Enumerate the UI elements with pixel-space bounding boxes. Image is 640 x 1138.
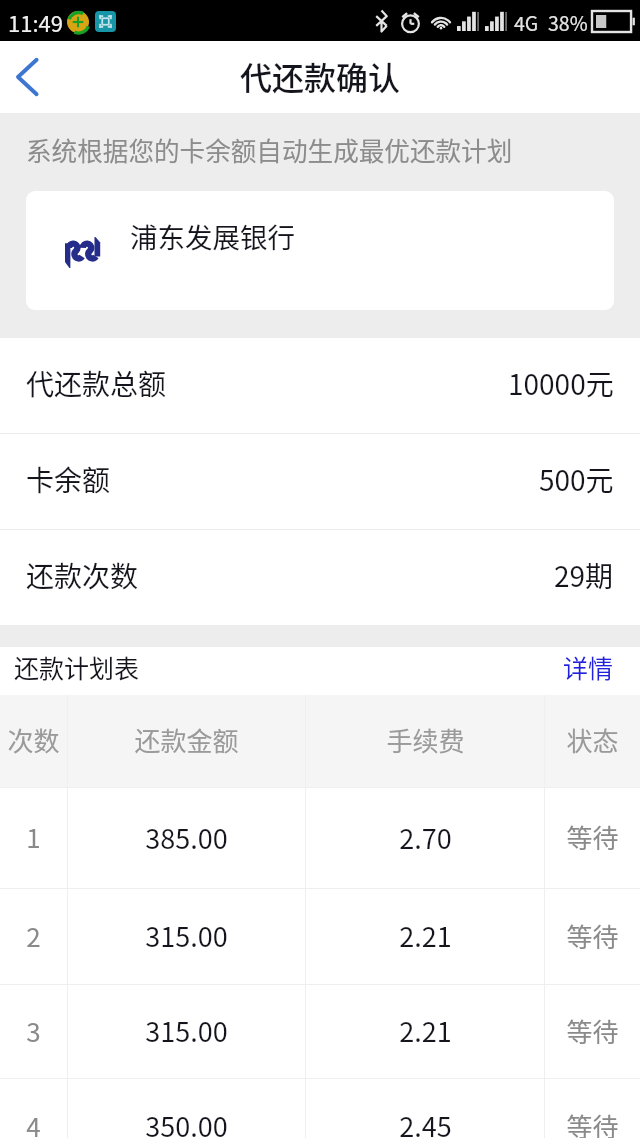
staticText: 10000元 <box>508 363 614 404</box>
staticText: 2.21 <box>399 916 452 955</box>
staticText: 4 <box>26 1107 41 1138</box>
button[interactable]: 浦东发展银行 <box>26 191 614 310</box>
staticText: 500元 <box>539 459 614 500</box>
staticText: 还款计划表 <box>14 649 140 685</box>
staticText: 4G <box>514 8 539 36</box>
other: Bluetooth <box>376 10 387 32</box>
staticText: 315.00 <box>145 916 228 955</box>
button[interactable]: 还款次数 <box>0 530 640 625</box>
staticText: 次数 <box>7 721 60 759</box>
button[interactable]: Back <box>0 41 62 113</box>
staticText: 350.00 <box>145 1106 228 1138</box>
staticText: 2.21 <box>399 1011 452 1050</box>
staticText: 还款金额 <box>134 721 239 759</box>
staticText: 还款次数 <box>26 555 139 596</box>
staticText: 状态 <box>566 721 619 759</box>
staticText: 等待 <box>566 818 619 856</box>
staticText: 等待 <box>566 1012 619 1050</box>
staticText: 3 <box>26 1012 41 1050</box>
staticText: 38% <box>548 8 588 36</box>
staticText: 卡余额 <box>26 459 111 500</box>
staticText: 系统根据您的卡余额自动生成最优还款计划 <box>26 131 513 168</box>
other: Assistant <box>67 11 89 33</box>
button[interactable]: 代还款总额 <box>0 338 640 433</box>
button[interactable]: 详情 <box>563 653 614 689</box>
staticText: 代还款确认 <box>240 53 401 99</box>
other: Signal <box>457 12 481 31</box>
other: Scan <box>95 11 116 32</box>
other: Signal <box>485 12 509 31</box>
staticText: 11:49 <box>8 6 63 38</box>
staticText: 385.00 <box>145 818 228 857</box>
other: Wi-Fi <box>432 13 450 30</box>
other: Alarm <box>400 10 421 33</box>
staticText: 1 <box>26 818 41 856</box>
staticText: 315.00 <box>145 1011 228 1050</box>
staticText: 29期 <box>554 555 614 596</box>
staticText: 等待 <box>566 1107 619 1138</box>
staticText: 手续费 <box>386 721 465 759</box>
staticText: 2 <box>26 917 41 955</box>
staticText: 代还款总额 <box>26 363 167 404</box>
staticText: 2.70 <box>399 818 452 857</box>
staticText: 2.45 <box>399 1106 452 1138</box>
staticText: 详情 <box>563 649 614 685</box>
staticText: 浦东发展银行 <box>130 216 295 256</box>
button[interactable]: 卡余额 <box>0 434 640 529</box>
other: Battery <box>592 11 634 32</box>
staticText: 等待 <box>566 917 619 955</box>
